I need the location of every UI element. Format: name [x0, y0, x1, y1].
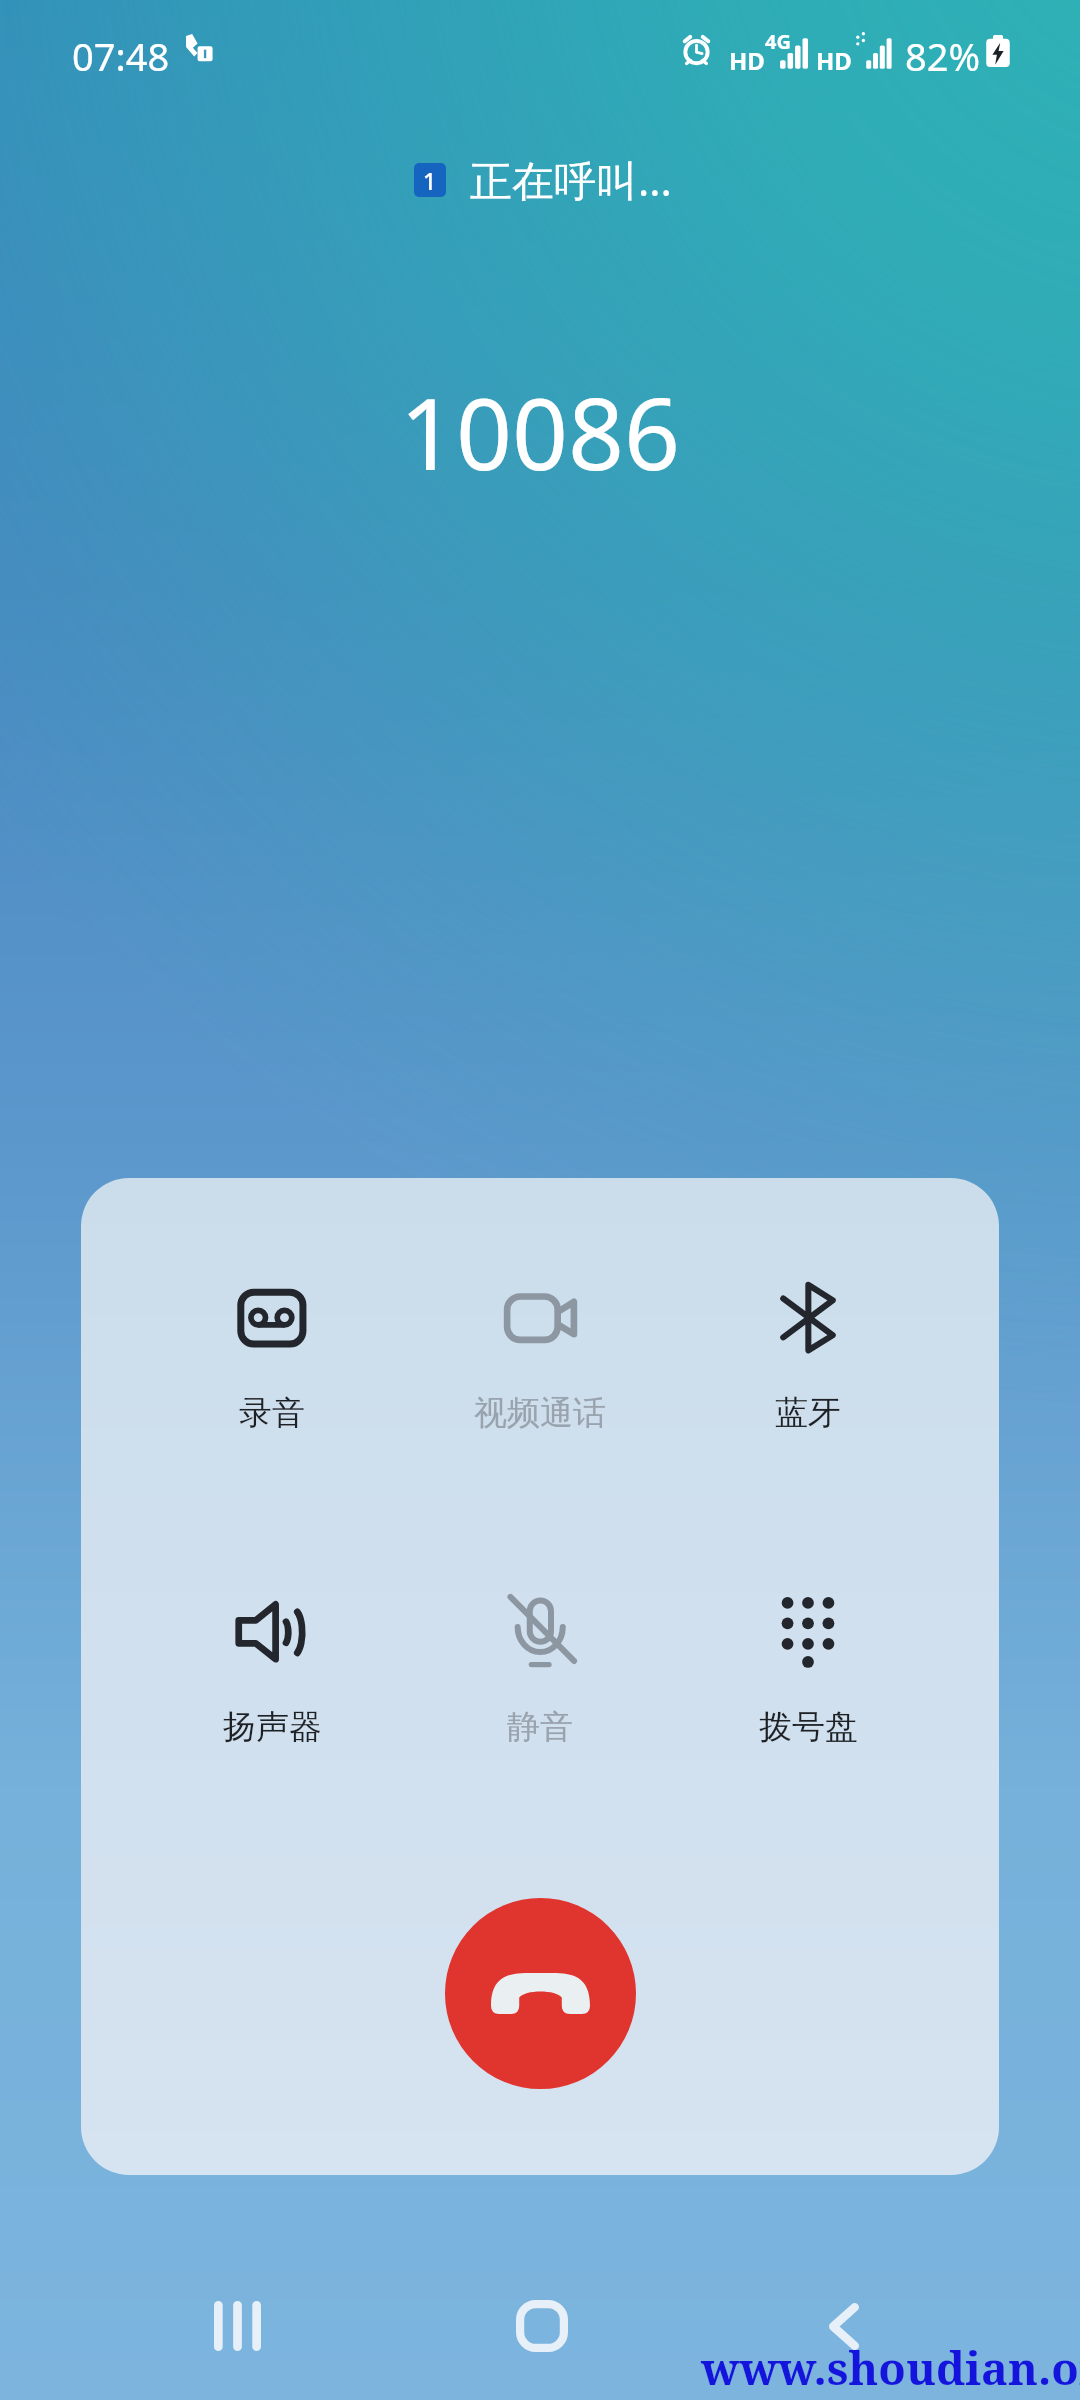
button[interactable]: Recent apps [180, 2276, 300, 2386]
staticText: www.shoudian.org [701, 2337, 1080, 2398]
staticText: 视频通话 [474, 1392, 606, 1434]
staticText: 正在呼叫... [470, 151, 672, 208]
button[interactable]: 扬声器 [157, 1590, 387, 1748]
staticText: 蓝牙 [775, 1392, 841, 1434]
staticText: 1 [423, 165, 437, 196]
staticText: 4G [765, 28, 791, 55]
button[interactable]: 录音 [157, 1276, 387, 1434]
button[interactable]: End call [445, 1898, 636, 2089]
staticText: 录音 [239, 1392, 305, 1434]
staticText: 10086 [0, 365, 1080, 498]
button[interactable]: Back [784, 2276, 904, 2386]
button[interactable]: 拨号盘 [693, 1590, 923, 1748]
button[interactable]: Home [482, 2276, 602, 2386]
staticText: 扬声器 [223, 1706, 322, 1748]
button[interactable]: 静音 [425, 1590, 655, 1748]
staticText: 82% [905, 30, 981, 82]
staticText: HD [816, 44, 852, 77]
staticText: 拨号盘 [759, 1706, 858, 1748]
button[interactable]: 蓝牙 [693, 1276, 923, 1434]
staticText: 07:48 [72, 30, 170, 82]
button[interactable]: 视频通话 [425, 1276, 655, 1434]
staticText: HD [729, 44, 765, 77]
staticText: 静音 [507, 1706, 573, 1748]
